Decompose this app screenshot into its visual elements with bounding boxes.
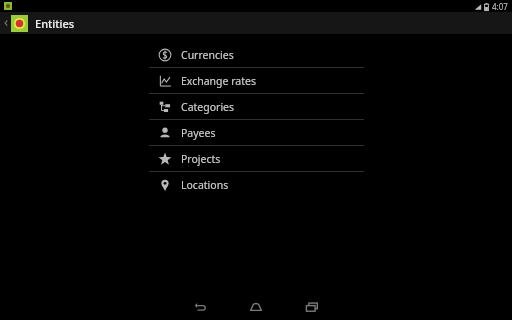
staticText: Entities	[35, 16, 75, 31]
staticText: Projects	[181, 152, 221, 166]
button[interactable]: Currencies	[149, 42, 364, 67]
staticText: Currencies	[181, 48, 234, 62]
staticText: Exchange rates	[181, 74, 256, 88]
staticText: 4:07	[492, 1, 508, 12]
button[interactable]: Home	[228, 294, 284, 320]
button[interactable]: Recent apps	[284, 294, 340, 320]
staticText: Payees	[181, 126, 216, 140]
button[interactable]: Projects	[149, 146, 364, 171]
button[interactable]: Exchange rates	[149, 68, 364, 93]
button[interactable]: Locations	[149, 172, 364, 197]
button[interactable]: Navigate up	[3, 17, 9, 29]
staticText: Categories	[181, 100, 235, 114]
button[interactable]: App icon	[11, 15, 28, 32]
staticText: Locations	[181, 178, 229, 192]
button[interactable]: Back	[172, 294, 228, 320]
button[interactable]: Payees	[149, 120, 364, 145]
button[interactable]: Categories	[149, 94, 364, 119]
